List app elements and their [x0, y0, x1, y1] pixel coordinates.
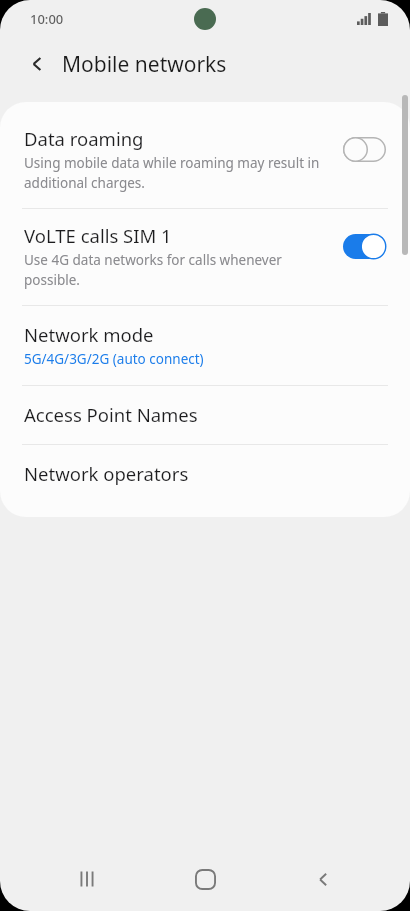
button[interactable]: Data roaming off [338, 132, 390, 166]
button[interactable]: VoLTE calls SIM 1 on [338, 229, 390, 263]
staticText: Network operators [24, 461, 189, 486]
staticText: 10:00 [30, 10, 64, 28]
button[interactable]: VoLTE calls SIM 1 [0, 209, 410, 305]
staticText: Access Point Names [24, 402, 198, 427]
staticText: Use 4G data networks for calls whenever … [24, 251, 328, 289]
staticText: Data roaming [24, 126, 144, 151]
button[interactable]: Network mode [0, 306, 410, 385]
button[interactable]: Recents [56, 848, 118, 910]
button[interactable]: Access Point Names [0, 386, 410, 444]
staticText: VoLTE calls SIM 1 [24, 223, 172, 248]
staticText: Using mobile data while roaming may resu… [24, 154, 328, 192]
staticText: Network mode [24, 322, 154, 347]
button[interactable]: Network operators [0, 445, 410, 503]
staticText: 5G/4G/3G/2G (auto connect) [24, 350, 204, 368]
button[interactable]: Data roaming [0, 112, 410, 208]
button[interactable]: Back [16, 42, 60, 86]
button[interactable]: Home [174, 848, 236, 910]
button[interactable]: Back [292, 848, 354, 910]
staticText: Mobile networks [62, 50, 227, 79]
